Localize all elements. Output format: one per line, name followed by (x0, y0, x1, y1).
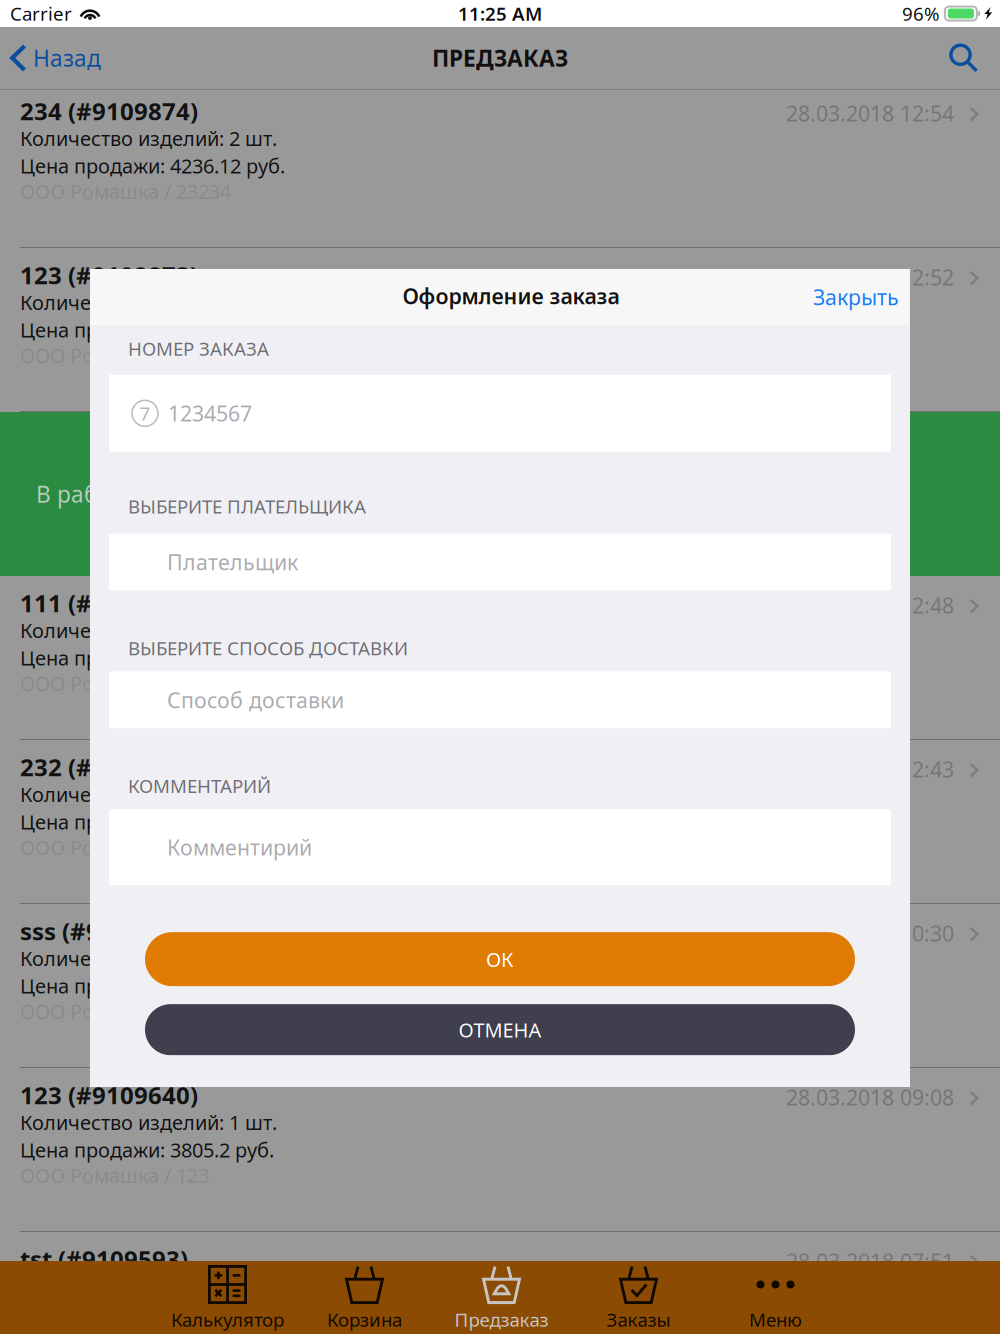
button[interactable]: ОК (145, 932, 855, 986)
staticText: 234 (#9109874) (20, 95, 198, 127)
staticText: Количество изделий: 3 шт. (20, 617, 277, 643)
staticText: Назад (33, 43, 101, 73)
staticText: НОМЕР ЗАКАЗА (128, 336, 269, 361)
button[interactable]: Плательщик (109, 534, 891, 591)
staticText: 28.03.2018 12:43 (786, 755, 954, 783)
staticText: Оформление заказа (402, 282, 619, 310)
staticText: Комментирий (167, 833, 312, 861)
button[interactable]: ОТМЕНА (145, 1004, 855, 1055)
staticText: 7 (139, 401, 150, 426)
button[interactable]: Меню (707, 1261, 844, 1334)
staticText: ООО Ромашка / tst (20, 1326, 200, 1334)
staticText: ВЫБЕРИТЕ СПОСОБ ДОСТАВКИ (128, 636, 408, 660)
button[interactable]: Заказы (570, 1261, 707, 1334)
button[interactable]: В работе (0, 412, 1000, 576)
staticText: Корзина (327, 1307, 402, 1332)
staticText: ООО Ромашка / sss (20, 998, 206, 1025)
staticText: ОК (486, 946, 514, 972)
staticText: 28.03.2018 12:54 (786, 99, 954, 127)
staticText: Меню (749, 1307, 802, 1332)
staticText: 123 (#9109640) (20, 1079, 198, 1111)
staticText: sss (#9109871) (20, 915, 192, 947)
button[interactable]: Закрыть (797, 269, 910, 325)
staticText: ООО Ромашка / 111 (20, 670, 209, 697)
staticText: Цена продажи: 2300.0 руб. (20, 316, 274, 343)
button[interactable]: 123 (#9109640) (0, 1068, 1000, 1231)
staticText: Цена продажи: 3805.2 руб. (20, 1136, 274, 1163)
staticText: Цена продажи: 120.0 руб. (20, 1300, 263, 1327)
staticText: ООО Ромашка / 123 (20, 1162, 209, 1189)
button[interactable]: Способ доставки (109, 671, 891, 728)
button[interactable]: tst (#9109593) (0, 1232, 1000, 1334)
staticText: tst (#9109593) (20, 1243, 188, 1275)
staticText: Способ доставки (167, 686, 344, 714)
staticText: Carrier (10, 1, 72, 26)
staticText: Количество изделий: 1 шт. (20, 1273, 277, 1299)
staticText: 28.03.2018 12:48 (786, 591, 954, 619)
staticText: ПРЕДЗАКАЗ (432, 43, 568, 73)
button[interactable]: Назад (0, 27, 113, 89)
staticText: 28.03.2018 09:08 (786, 1083, 954, 1111)
button[interactable]: 232 (#9109872) (0, 740, 1000, 903)
staticText: Цена продажи: 980.0 руб. (20, 808, 263, 835)
staticText: 28.03.2018 10:30 (786, 919, 954, 947)
staticText: ОТМЕНА (458, 1016, 541, 1043)
button[interactable]: Комментирий (109, 809, 891, 885)
staticText: Предзаказ (454, 1307, 548, 1332)
button[interactable]: 123 (#9109873) (0, 248, 1000, 411)
staticText: ООО Ромашка / 123 (20, 342, 209, 369)
staticText: Заказы (606, 1307, 670, 1332)
staticText: Калькулятор (171, 1307, 284, 1332)
button[interactable]: 234 (#9109874) (0, 90, 1000, 247)
staticText: Количество изделий: 2 шт. (20, 781, 277, 807)
staticText: 28.03.2018 07:51 (786, 1247, 954, 1275)
staticText: Количество изделий: 1 шт. (20, 289, 277, 315)
staticText: В работе (36, 479, 133, 509)
staticText: 11:25 AM (458, 1, 542, 26)
staticText: 1234567 (168, 399, 252, 427)
staticText: 232 (#9109872) (20, 751, 198, 783)
staticText: 96% (902, 1, 940, 26)
staticText: Количество изделий: 1 шт. (20, 1109, 277, 1135)
staticText: 111 (#9109875) (20, 587, 198, 619)
staticText: Количество изделий: 2 шт. (20, 125, 277, 151)
staticText: 123 (#9109873) (20, 259, 198, 291)
staticText: Цена продажи: 4236.12 руб. (20, 152, 285, 179)
staticText: ООО Ромашка / 232 (20, 834, 209, 861)
button[interactable]: Корзина (296, 1261, 433, 1334)
button[interactable]: 111 (#9109875) (0, 576, 1000, 739)
button[interactable]: Калькулятор (159, 1261, 296, 1334)
staticText: Количество изделий: 1 шт. (20, 945, 277, 971)
staticText: КОММЕНТАРИЙ (128, 773, 271, 798)
button[interactable]: Предзаказ (433, 1261, 570, 1334)
staticText: Плательщик (167, 548, 298, 576)
staticText: Закрыть (813, 283, 899, 311)
staticText: ВЫБЕРИТЕ ПЛАТЕЛЬЩИКА (128, 494, 366, 519)
button[interactable]: sss (#9109871) (0, 904, 1000, 1067)
button[interactable]: Search (931, 27, 1000, 89)
staticText: Цена продажи: 450.0 руб. (20, 972, 263, 999)
staticText: Цена продажи: 1130.5 руб. (20, 644, 274, 671)
button[interactable]: 7 (109, 375, 891, 452)
staticText: 28.03.2018 12:52 (786, 263, 954, 291)
staticText: ООО Ромашка / 23234 (20, 178, 231, 205)
